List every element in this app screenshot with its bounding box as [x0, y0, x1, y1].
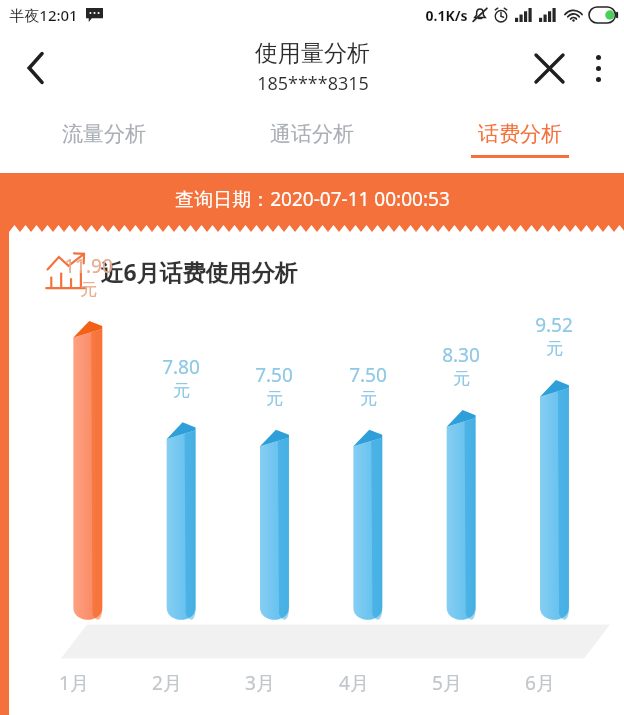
- button[interactable]: 通话分析: [208, 105, 416, 173]
- staticText: 元: [266, 388, 283, 409]
- staticText: 元: [453, 368, 470, 389]
- staticText: 7.80: [162, 354, 200, 380]
- staticText: 话费分析: [478, 121, 562, 147]
- staticText: 11.90: [64, 253, 113, 279]
- button[interactable]: Close: [523, 42, 575, 94]
- staticText: 流量分析: [62, 121, 146, 147]
- staticText: 6月: [525, 670, 555, 696]
- staticText: 元: [360, 388, 377, 409]
- staticText: 1月: [59, 670, 89, 696]
- staticText: 元: [80, 279, 97, 300]
- staticText: 9.52: [535, 312, 573, 338]
- staticText: 元: [173, 380, 190, 401]
- staticText: 185****8315: [257, 71, 369, 96]
- staticText: 近6月话费使用分析: [100, 256, 298, 287]
- staticText: 元: [546, 338, 563, 359]
- staticText: 查询日期：2020-07-11 00:00:53: [175, 186, 450, 212]
- button[interactable]: More options: [575, 45, 621, 91]
- staticText: 8.30: [442, 342, 480, 368]
- staticText: 半夜12:01: [9, 5, 78, 25]
- button[interactable]: Back: [8, 40, 64, 96]
- staticText: 使用量分析: [255, 39, 370, 68]
- staticText: 通话分析: [270, 121, 354, 147]
- staticText: 2月: [152, 670, 182, 696]
- staticText: 7.50: [255, 362, 293, 388]
- staticText: 5月: [432, 670, 462, 696]
- staticText: 7.50: [349, 362, 387, 388]
- staticText: 4月: [339, 670, 369, 696]
- button[interactable]: 流量分析: [0, 105, 208, 173]
- staticText: 3月: [245, 670, 275, 696]
- staticText: 0.1K/s: [425, 6, 468, 25]
- button[interactable]: 话费分析: [416, 105, 624, 173]
